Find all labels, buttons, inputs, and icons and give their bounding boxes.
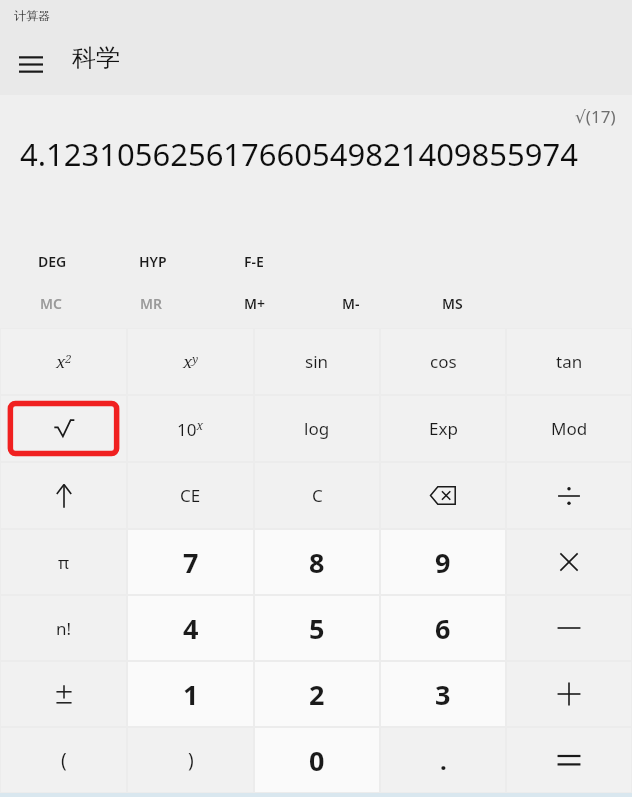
button[interactable]: MC [40, 294, 62, 313]
button[interactable]: 1 [128, 662, 253, 726]
staticText: C [312, 484, 323, 507]
staticText: 8 [309, 544, 325, 581]
staticText: n! [56, 617, 72, 640]
staticText: HYP [139, 252, 167, 271]
staticText: MC [40, 294, 62, 313]
staticText: 4 [183, 610, 199, 647]
staticText: DEG [38, 252, 67, 271]
button[interactable]: DEG [38, 252, 67, 271]
button[interactable]: . [381, 728, 505, 792]
staticText: Mod [551, 417, 588, 440]
staticText: x2 [56, 350, 72, 373]
staticText: 7 [183, 544, 199, 581]
staticText: 4.123105625617660549821409855974 [20, 133, 578, 175]
staticText: 科学 [72, 43, 120, 73]
button[interactable]: log [255, 396, 379, 461]
button[interactable]: ( [1, 728, 126, 792]
staticText: tan [556, 350, 583, 373]
button[interactable]: MR [140, 294, 163, 313]
button[interactable]: 8 [255, 530, 379, 594]
button[interactable]: Multiply [507, 530, 631, 594]
staticText: Exp [429, 417, 458, 440]
button[interactable]: 4 [128, 596, 253, 660]
staticText: 5 [309, 610, 325, 647]
staticText: xy [183, 350, 199, 373]
button[interactable]: sin [255, 329, 379, 394]
button[interactable]: 0 [255, 728, 379, 792]
staticText: ) [188, 747, 194, 773]
button[interactable]: C [255, 463, 379, 528]
button[interactable]: cos [381, 329, 505, 394]
button[interactable]: Plus [507, 662, 631, 726]
button[interactable]: 10x [128, 396, 253, 461]
button[interactable]: CE [128, 463, 253, 528]
staticText: 6 [435, 610, 451, 647]
button[interactable]: π [1, 530, 126, 594]
button[interactable]: 3 [381, 662, 505, 726]
button[interactable]: 2 [255, 662, 379, 726]
button[interactable]: 9 [381, 530, 505, 594]
staticText: . [440, 744, 447, 777]
button[interactable]: 7 [128, 530, 253, 594]
staticText: 计算器 [14, 8, 50, 23]
staticText: MR [140, 294, 163, 313]
button[interactable]: MS [442, 294, 463, 313]
staticText: cos [430, 350, 457, 373]
button[interactable]: Equals [507, 728, 631, 792]
button[interactable]: 5 [255, 596, 379, 660]
staticText: M- [342, 294, 360, 313]
button[interactable]: F-E [244, 252, 264, 271]
staticText: M+ [244, 294, 266, 313]
button[interactable]: M+ [244, 294, 266, 313]
staticText: √(17) [575, 105, 616, 128]
button[interactable]: Backspace [381, 463, 505, 528]
staticText: 9 [435, 544, 451, 581]
button[interactable]: Plus minus [1, 662, 126, 726]
button[interactable]: 6 [381, 596, 505, 660]
button[interactable]: tan [507, 329, 631, 394]
button[interactable]: n! [1, 596, 126, 660]
staticText: 1 [183, 676, 199, 713]
staticText: MS [442, 294, 463, 313]
staticText: F-E [244, 252, 264, 271]
button[interactable]: Mod [507, 396, 631, 461]
staticText: 10x [177, 417, 204, 441]
button[interactable]: Menu [10, 44, 52, 84]
button[interactable]: M- [342, 294, 360, 313]
button[interactable]: Minus [507, 596, 631, 660]
staticText: log [304, 417, 330, 440]
button[interactable]: HYP [139, 252, 167, 271]
button[interactable]: Exp [381, 396, 505, 461]
staticText: sin [305, 350, 329, 373]
staticText: 3 [435, 676, 451, 713]
button[interactable]: Up [1, 463, 126, 528]
button[interactable]: Divide [507, 463, 631, 528]
staticText: π [58, 551, 70, 574]
staticText: CE [180, 484, 201, 507]
button[interactable] [1, 396, 126, 461]
button[interactable]: ) [128, 728, 253, 792]
button[interactable]: xy [128, 329, 253, 394]
staticText: 2 [309, 676, 325, 713]
staticText: ( [61, 747, 67, 773]
button[interactable]: x2 [1, 329, 126, 394]
staticText: 0 [309, 742, 325, 779]
